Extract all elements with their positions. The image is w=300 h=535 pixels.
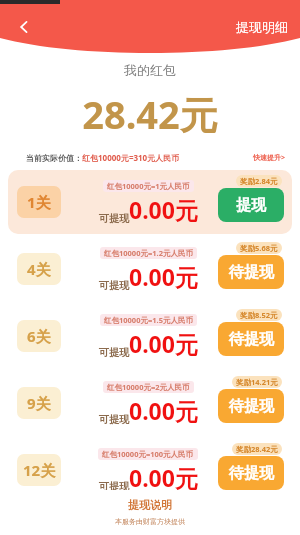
- staticText: 9关: [27, 393, 51, 413]
- staticText: 提现: [236, 196, 266, 215]
- button[interactable]: 待提现: [218, 389, 284, 423]
- staticText: 本服务由财富方块提供: [115, 517, 185, 526]
- staticText: 奖励5.68元: [240, 243, 278, 253]
- staticText: 1关: [27, 192, 51, 212]
- staticText: 待提现: [229, 330, 274, 349]
- button[interactable]: 12关: [8, 438, 292, 502]
- staticText: 12关: [23, 460, 56, 480]
- staticText: 0.00元: [129, 194, 198, 225]
- staticText: 奖励28.42元: [236, 444, 278, 454]
- button[interactable]: 待提现: [218, 322, 284, 356]
- staticText: 待提现: [229, 263, 274, 282]
- staticText: 红包10000元=100元人民币: [102, 449, 194, 459]
- staticText: 可提现: [99, 212, 129, 225]
- button[interactable]: 快速提升>: [253, 153, 286, 163]
- button[interactable]: 6关: [8, 304, 292, 368]
- button[interactable]: Back: [6, 9, 42, 45]
- button[interactable]: 4关: [8, 237, 292, 301]
- staticText: 奖励8.52元: [240, 310, 278, 320]
- staticText: 6关: [27, 326, 51, 346]
- staticText: 0.00元: [129, 395, 198, 426]
- staticText: 奖励2.84元: [240, 176, 278, 186]
- staticText: 28.42元: [0, 88, 300, 140]
- staticText: 可提现: [99, 480, 129, 493]
- staticText: 4关: [27, 259, 51, 279]
- button[interactable]: 待提现: [218, 456, 284, 490]
- staticText: 待提现: [229, 397, 274, 416]
- button[interactable]: 提现明细: [236, 19, 288, 35]
- staticText: 红包10000元=2元人民币: [107, 382, 190, 392]
- staticText: 0.00元: [129, 328, 198, 359]
- staticText: 可提现: [99, 413, 129, 426]
- staticText: 奖励14.21元: [236, 377, 278, 387]
- button[interactable]: 提现说明: [128, 498, 172, 512]
- staticText: 红包10000元=1.2元人民币: [104, 248, 193, 258]
- button[interactable]: 提现: [218, 188, 284, 222]
- button[interactable]: 待提现: [218, 255, 284, 289]
- staticText: 红包10000元=1.5元人民币: [104, 315, 193, 325]
- staticText: 可提现: [99, 346, 129, 359]
- staticText: 红包10000元=1元人民币: [107, 181, 190, 191]
- button[interactable]: 9关: [8, 371, 292, 435]
- staticText: 红包10000元=310元人民币: [82, 152, 180, 163]
- staticText: 可提现: [99, 279, 129, 292]
- staticText: 当前实际价值：: [26, 153, 82, 163]
- staticText: 我的红包: [0, 62, 300, 78]
- staticText: 待提现: [229, 464, 274, 483]
- staticText: 0.00元: [129, 462, 198, 493]
- staticText: 0.00元: [129, 261, 198, 292]
- button[interactable]: 1关: [8, 170, 292, 234]
